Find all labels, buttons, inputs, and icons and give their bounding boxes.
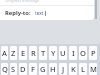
button[interactable]: S (10, 63, 17, 75)
button[interactable]: E (19, 46, 27, 60)
button[interactable]: O (79, 46, 87, 60)
button[interactable]: I (69, 46, 77, 60)
staticText: I (72, 48, 75, 58)
button[interactable]: G (39, 63, 47, 75)
staticText: U (60, 48, 66, 58)
button[interactable]: Q (1, 63, 8, 75)
button[interactable]: A (1, 46, 8, 60)
button[interactable]: T (39, 46, 47, 60)
staticText: G (40, 64, 46, 74)
staticText: text (35, 10, 44, 16)
staticText: Original message (5, 0, 40, 4)
staticText: S (11, 64, 16, 74)
staticText: K (71, 64, 76, 74)
staticText: A (2, 48, 7, 58)
staticText: E (21, 48, 26, 58)
staticText: Q (2, 64, 8, 74)
staticText: Y (51, 48, 56, 58)
button[interactable]: Original message (0, 0, 94, 20)
button[interactable]: U (59, 46, 67, 60)
staticText: R (31, 48, 36, 58)
staticText: L (81, 64, 86, 74)
staticText: O (80, 48, 86, 58)
button[interactable]: H (49, 63, 57, 75)
staticText: Reply-to: (5, 9, 31, 17)
button[interactable]: P (89, 46, 97, 60)
button[interactable]: Z (10, 46, 17, 60)
staticText: D (20, 64, 26, 74)
button[interactable]: M (89, 63, 97, 75)
button[interactable]: D (19, 63, 27, 75)
staticText: M (90, 64, 97, 74)
button[interactable]: F (29, 63, 37, 75)
button[interactable]: J (59, 63, 67, 75)
staticText: F (31, 64, 35, 74)
staticText: Z (11, 48, 16, 58)
staticText: J (62, 64, 65, 74)
staticText: T (41, 48, 46, 58)
button[interactable]: K (69, 63, 77, 75)
staticText: H (50, 64, 56, 74)
other: On-screen AZERTY keyboard (0, 44, 98, 75)
button[interactable]: R (29, 46, 37, 60)
button[interactable]: Y (49, 46, 57, 60)
staticText: P (91, 48, 96, 58)
button[interactable]: L (79, 63, 87, 75)
